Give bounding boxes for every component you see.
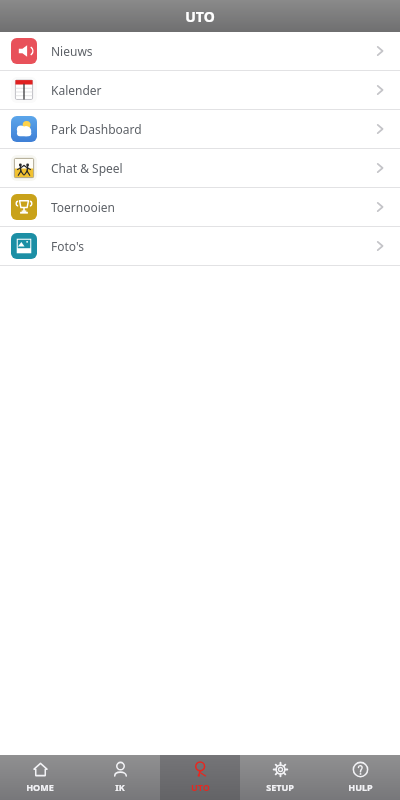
button[interactable]: Ik: [80, 755, 160, 800]
other: Hulp: [352, 761, 369, 778]
button[interactable]: Toernooien: [0, 188, 400, 226]
staticText: Chat & Speel: [51, 160, 123, 176]
staticText: HULP: [348, 781, 373, 793]
button[interactable]: Home: [0, 755, 80, 800]
staticText: UTO: [185, 7, 215, 26]
other: Setup: [272, 761, 289, 778]
other: Ik: [112, 761, 129, 778]
button[interactable]: Chat & Speel: [0, 149, 400, 187]
button[interactable]: Hulp: [320, 755, 400, 800]
staticText: IK: [115, 781, 125, 793]
button[interactable]: Park Dashboard: [0, 110, 400, 148]
other: UTO: [192, 761, 209, 778]
button[interactable]: UTO: [160, 755, 240, 800]
staticText: Nieuws: [51, 43, 93, 59]
button[interactable]: Setup: [240, 755, 320, 800]
staticText: Toernooien: [51, 199, 116, 215]
staticText: HOME: [26, 781, 54, 793]
button[interactable]: Nieuws: [0, 32, 400, 70]
button[interactable]: Foto's: [0, 227, 400, 265]
staticText: Park Dashboard: [51, 121, 142, 137]
staticText: UTO: [191, 781, 210, 793]
staticText: Foto's: [51, 238, 85, 254]
staticText: Kalender: [51, 82, 102, 98]
other: Home: [32, 761, 49, 778]
button[interactable]: Kalender: [0, 71, 400, 109]
staticText: SETUP: [266, 781, 294, 793]
